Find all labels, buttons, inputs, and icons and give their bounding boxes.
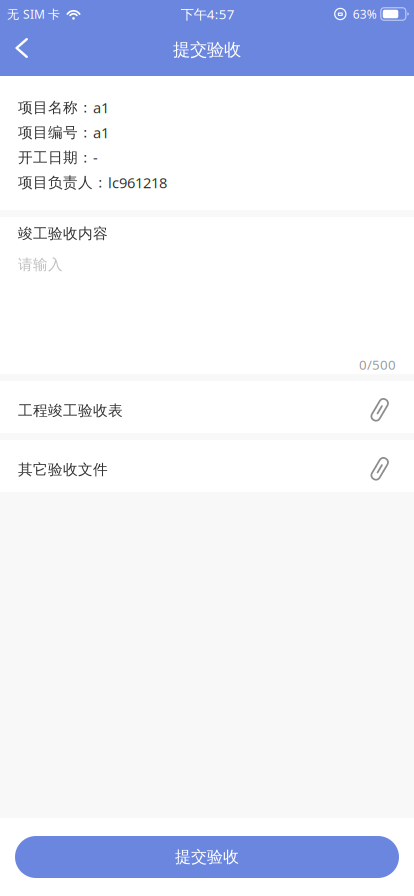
staticText: 竣工验收内容 — [18, 225, 108, 243]
staticText: 项目编号： — [18, 123, 93, 141]
staticText: 无 SIM 卡 — [7, 6, 60, 22]
staticText: 项目名称： — [18, 98, 93, 116]
staticText: a1 — [93, 98, 109, 117]
staticText: 提交验收 — [175, 847, 239, 867]
staticText: 63% — [353, 6, 377, 22]
button[interactable]: 提交验收 — [15, 836, 399, 878]
staticText: 项目负责人： — [18, 173, 108, 191]
staticText: 开工日期： — [18, 148, 93, 166]
staticText: 0/500 — [359, 356, 396, 373]
staticText: 其它验收文件 — [18, 460, 108, 478]
staticText: a1 — [93, 123, 109, 142]
button[interactable]: 工程竣工验收表 — [0, 381, 414, 433]
staticText: - — [93, 148, 98, 167]
staticText: 下午4:57 — [181, 5, 235, 23]
button[interactable]: Back — [0, 28, 40, 76]
staticText: 请输入 — [18, 255, 63, 273]
staticText: lc961218 — [108, 173, 167, 192]
staticText: 提交验收 — [173, 39, 241, 60]
staticText: 工程竣工验收表 — [18, 401, 123, 419]
button[interactable]: 其它验收文件 — [0, 440, 414, 492]
